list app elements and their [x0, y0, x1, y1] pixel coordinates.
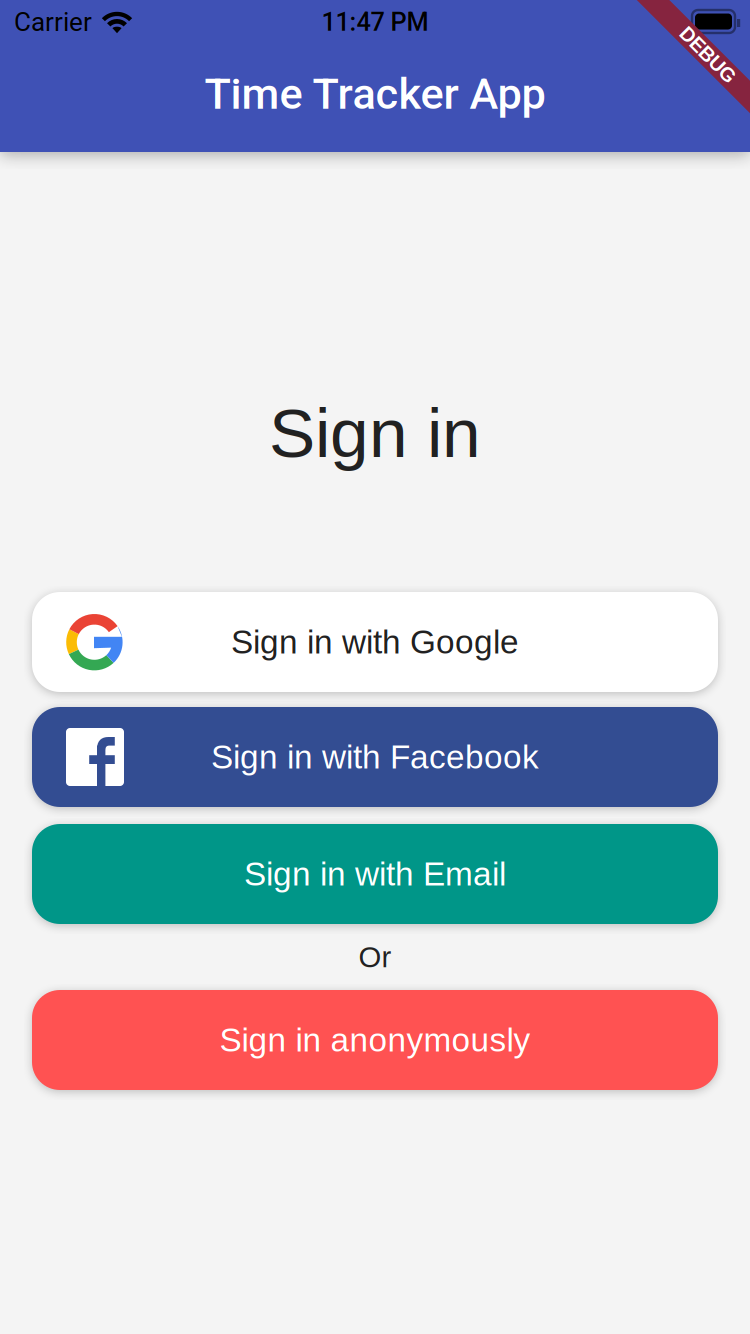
- staticText: DEBUG: [672, 44, 743, 66]
- staticText: Carrier: [14, 7, 92, 37]
- staticText: Or: [358, 941, 391, 973]
- staticText: Sign in with Google: [231, 623, 519, 661]
- staticText: 11:47 PM: [321, 7, 428, 37]
- staticText: Sign in with Facebook: [211, 738, 539, 776]
- button[interactable]: Sign in with Email: [32, 824, 718, 924]
- button[interactable]: Sign in with Google: [32, 592, 718, 692]
- staticText: Sign in anonymously: [219, 1021, 530, 1059]
- button[interactable]: Sign in with Facebook: [32, 707, 718, 807]
- staticText: Sign in with Email: [244, 855, 506, 893]
- button[interactable]: Sign in anonymously: [32, 990, 718, 1090]
- staticText: Time Tracker App: [204, 69, 545, 119]
- staticText: Sign in: [269, 394, 481, 472]
